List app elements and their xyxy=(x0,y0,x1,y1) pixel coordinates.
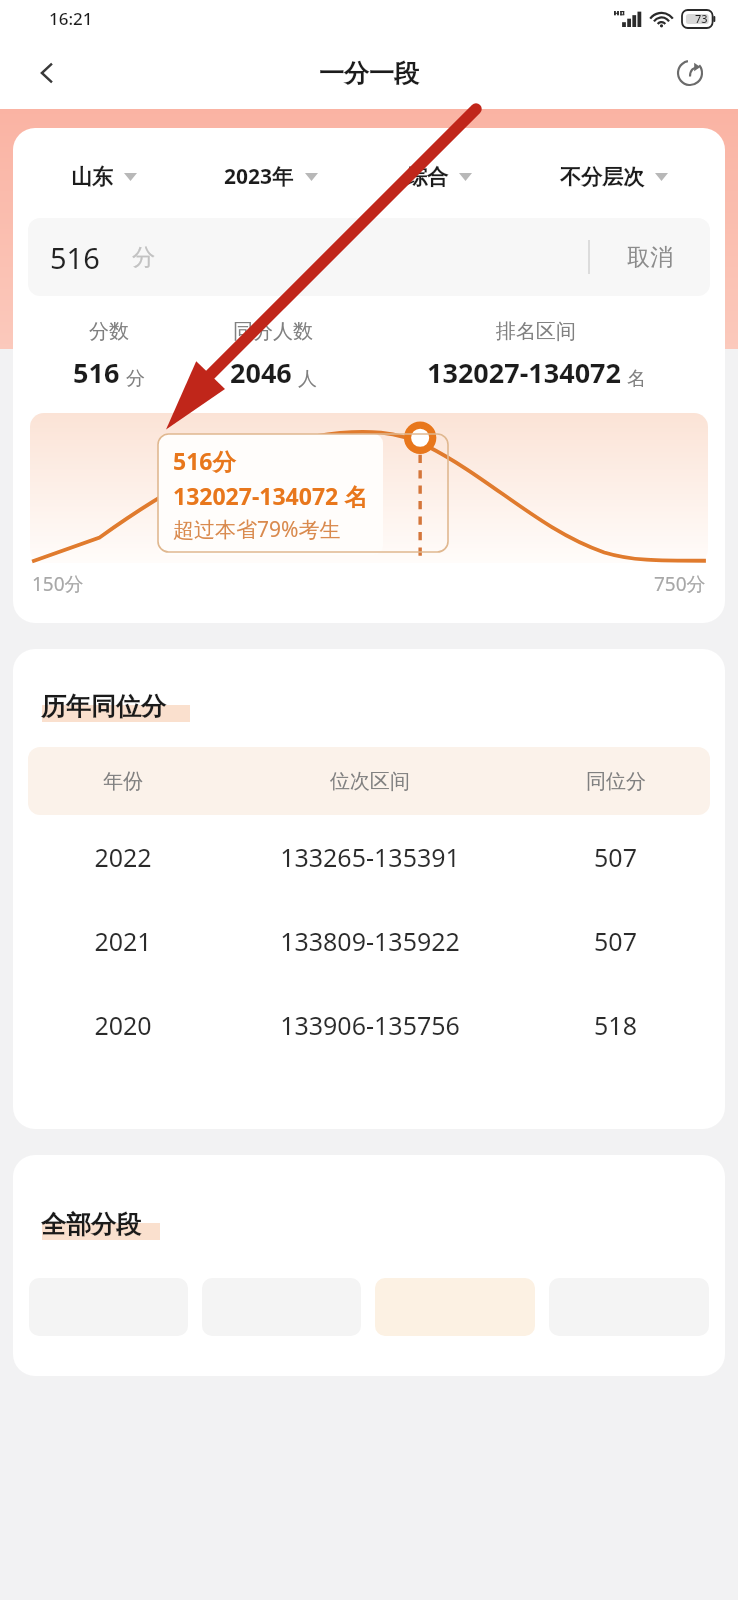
staticText: 516分 xyxy=(173,445,236,476)
staticText: 133265-135391 xyxy=(280,840,460,874)
staticText: 150分 xyxy=(32,571,84,597)
button[interactable]: Back xyxy=(22,47,74,99)
staticText: 一分一段 xyxy=(319,58,419,89)
staticText: 516 xyxy=(50,238,100,277)
staticText: 133809-135922 xyxy=(280,924,460,958)
staticText: 750分 xyxy=(654,571,706,597)
button[interactable]: 山东 xyxy=(28,160,180,194)
staticText: 507 xyxy=(594,924,637,958)
staticText: 超过本省79%考生 xyxy=(173,515,341,544)
staticText: 2021 xyxy=(94,924,152,958)
staticText: 分数 xyxy=(89,319,129,344)
staticText: 名 xyxy=(627,367,646,391)
staticText: 507 xyxy=(594,840,637,874)
staticText: 综合 xyxy=(406,164,448,190)
staticText: 取消 xyxy=(627,243,673,272)
staticText: 人 xyxy=(298,367,317,391)
staticText: 132027-134072 xyxy=(427,354,621,391)
staticText: 同位分 xyxy=(586,769,646,794)
button[interactable]: 综合 xyxy=(361,160,517,194)
button[interactable]: 2020 xyxy=(28,983,710,1067)
staticText: 全部分段 xyxy=(41,1209,141,1240)
staticText: 133906-135756 xyxy=(280,1008,460,1042)
button[interactable]: 不分层次 xyxy=(517,160,710,194)
staticText: 位次区间 xyxy=(330,769,410,794)
staticText: 2022 xyxy=(94,840,152,874)
button[interactable]: 2022 xyxy=(28,815,710,899)
staticText: 16:21 xyxy=(49,7,93,30)
button[interactable]: 2021 xyxy=(28,899,710,983)
staticText: 山东 xyxy=(71,164,113,190)
staticText: 2020 xyxy=(94,1008,152,1042)
staticText: 516 xyxy=(73,354,120,391)
staticText: 不分层次 xyxy=(560,164,644,190)
staticText: 518 xyxy=(594,1008,637,1042)
staticText: 年份 xyxy=(103,769,143,794)
staticText: 2023年 xyxy=(224,162,294,191)
staticText: 132027-134072 名 xyxy=(173,480,368,511)
staticText: 分 xyxy=(132,243,155,272)
staticText: 分 xyxy=(126,367,145,391)
staticText: 历年同位分 xyxy=(41,691,166,722)
button[interactable]: 516 xyxy=(28,218,710,296)
staticText: 2046 xyxy=(230,354,292,391)
staticText: 73 xyxy=(695,11,708,26)
staticText: 排名区间 xyxy=(496,319,576,344)
button[interactable]: 2023年 xyxy=(180,158,361,195)
button[interactable]: Share xyxy=(664,47,716,99)
staticText: 同分人数 xyxy=(233,319,313,344)
